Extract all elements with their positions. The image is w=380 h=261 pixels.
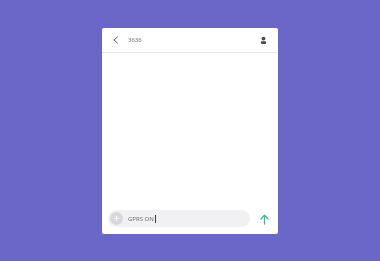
button[interactable]: Send [255, 210, 273, 228]
button[interactable]: Back [108, 32, 124, 48]
button[interactable]: Contact info [254, 31, 272, 49]
staticText: GPRS ON [128, 215, 154, 223]
staticText: 3636 [128, 36, 142, 44]
button[interactable]: GPRS ON [108, 210, 250, 227]
